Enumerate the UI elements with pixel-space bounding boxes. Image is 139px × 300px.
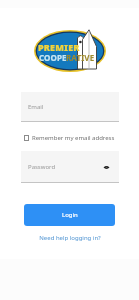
staticText: Password [28,163,56,171]
button[interactable]: Remember my email address [21,131,115,145]
button[interactable]: Password [21,151,119,183]
staticText: Email [28,103,44,111]
button[interactable]: Login [24,204,115,226]
button[interactable]: Show password [100,161,112,173]
staticText: Remember my email address [32,134,115,142]
staticText: Login [62,211,78,219]
staticText: COOPE [39,52,67,63]
staticText: Need help logging in? [39,234,101,242]
staticText: RATIVE [66,52,95,63]
button[interactable]: Email [21,92,119,122]
button[interactable]: Need help logging in? [0,232,139,244]
staticText: PREMIER [38,41,80,53]
